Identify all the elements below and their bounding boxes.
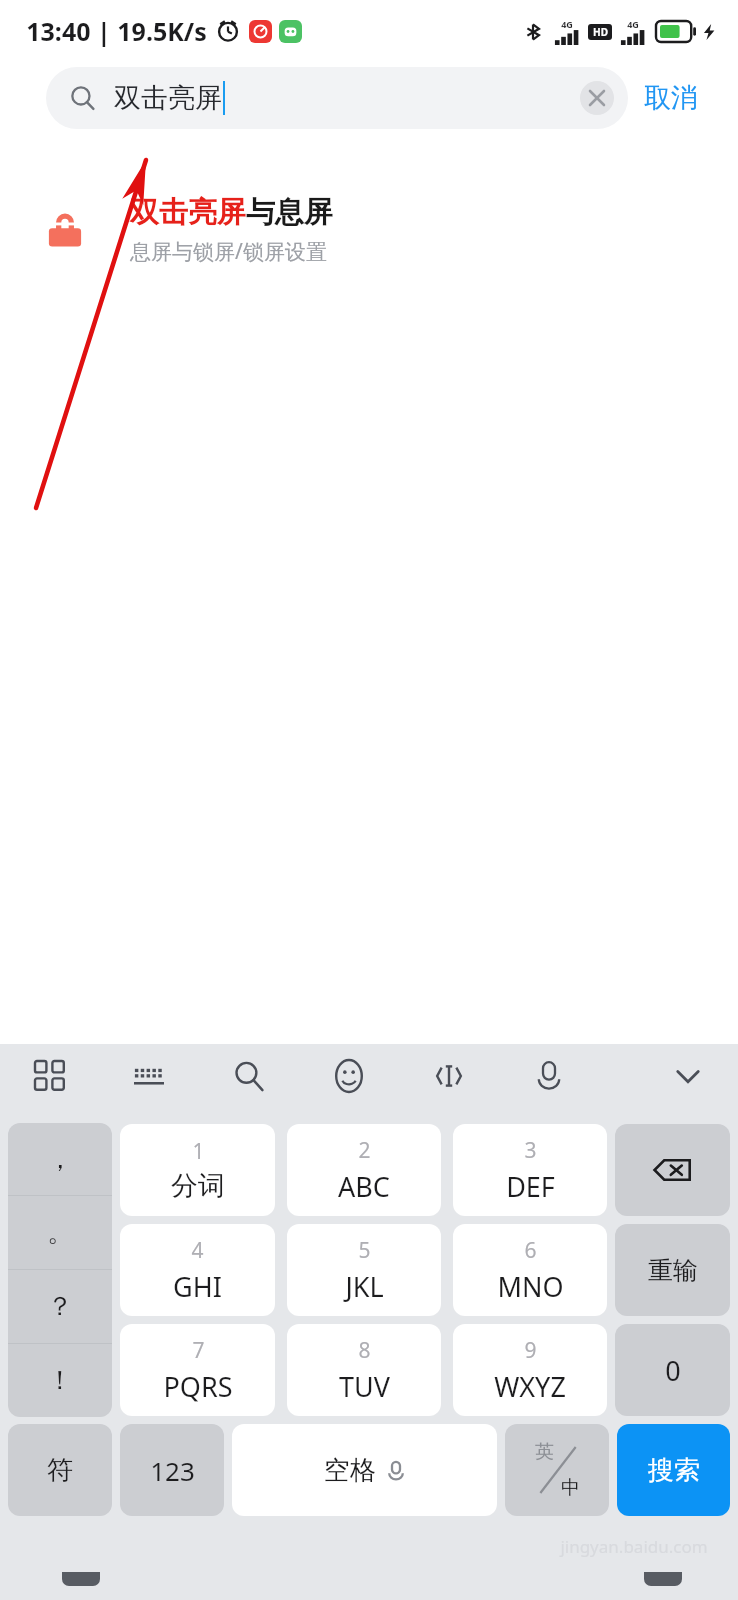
button[interactable]: 取消 — [628, 73, 714, 123]
staticText: ！ — [47, 1364, 73, 1397]
staticText: 4G — [561, 18, 573, 30]
button[interactable]: Clear — [580, 81, 614, 115]
staticText: GHI — [173, 1268, 222, 1305]
staticText: 双击亮屏 — [114, 81, 222, 115]
staticText: 搜索 — [648, 1454, 700, 1487]
button[interactable]: 2 — [287, 1124, 441, 1216]
staticText: 双击亮屏与息屏 — [130, 194, 333, 231]
staticText: 7 — [192, 1336, 205, 1365]
button[interactable]: 3 — [453, 1124, 607, 1216]
staticText: MNO — [497, 1268, 564, 1305]
button[interactable]: 123 — [120, 1424, 224, 1516]
button[interactable]: Voice — [521, 1048, 577, 1104]
button[interactable]: Search — [221, 1048, 277, 1104]
staticText: JKL — [345, 1268, 384, 1305]
button[interactable]: ？ — [8, 1270, 112, 1343]
staticText: ？ — [47, 1290, 73, 1323]
staticText: 1 — [192, 1137, 205, 1166]
staticText: 4G — [627, 18, 639, 30]
button[interactable]: 9 — [453, 1324, 607, 1416]
staticText: ABC — [338, 1168, 390, 1205]
button[interactable]: Emoji — [321, 1048, 377, 1104]
button[interactable]: 符 — [8, 1424, 112, 1516]
button[interactable]: ， — [8, 1123, 112, 1195]
staticText: DEF — [506, 1168, 555, 1205]
staticText: TUV — [339, 1368, 390, 1405]
button[interactable]: 双击亮屏 — [46, 67, 628, 129]
staticText: 5 — [358, 1236, 371, 1265]
staticText: 123 — [150, 1453, 195, 1488]
staticText: 6 — [524, 1236, 537, 1265]
button[interactable]: 7 — [120, 1324, 275, 1416]
staticText: 9 — [524, 1336, 537, 1365]
button[interactable]: 双击亮屏与息屏 — [0, 180, 738, 280]
staticText: 4 — [191, 1236, 204, 1265]
button[interactable]: 1 — [120, 1124, 275, 1216]
staticText: 分词 — [171, 1169, 225, 1203]
staticText: 取消 — [644, 81, 698, 115]
button[interactable]: 5 — [287, 1224, 441, 1316]
staticText: 中 — [561, 1476, 580, 1500]
staticText: WXYZ — [494, 1368, 566, 1405]
button[interactable]: 6 — [453, 1224, 607, 1316]
staticText: 8 — [358, 1336, 371, 1365]
staticText: 。 — [47, 1216, 73, 1249]
button[interactable]: 搜索 — [617, 1424, 730, 1516]
staticText: 符 — [47, 1454, 73, 1487]
staticText: 重输 — [648, 1255, 698, 1286]
button[interactable]: 。 — [8, 1196, 112, 1269]
button[interactable]: Cursor — [421, 1048, 477, 1104]
staticText: 英 — [535, 1440, 554, 1464]
button[interactable]: ！ — [8, 1344, 112, 1417]
staticText: ， — [47, 1143, 73, 1176]
button[interactable]: 重输 — [615, 1224, 730, 1316]
button[interactable]: Keyboard — [121, 1048, 177, 1104]
staticText: 空格 — [324, 1454, 376, 1487]
button[interactable]: 空格 — [232, 1424, 497, 1516]
button[interactable]: Hide keyboard — [660, 1048, 716, 1104]
button[interactable]: 0 — [615, 1324, 730, 1416]
staticText: 3 — [524, 1136, 537, 1165]
button[interactable]: 4 — [120, 1224, 275, 1316]
staticText: 2 — [358, 1136, 371, 1165]
button[interactable]: Backspace — [615, 1124, 730, 1216]
staticText: jingyan.baidu.com — [560, 1535, 708, 1558]
staticText: HD — [593, 25, 608, 39]
button[interactable]: Grid — [22, 1048, 78, 1104]
staticText: 13:40 | 19.5K/s — [26, 14, 207, 48]
staticText: 0 — [665, 1352, 681, 1389]
button[interactable]: 8 — [287, 1324, 441, 1416]
button[interactable]: 英 — [505, 1424, 609, 1516]
staticText: PQRS — [163, 1368, 233, 1405]
staticText: 息屏与锁屏/锁屏设置 — [130, 237, 327, 266]
